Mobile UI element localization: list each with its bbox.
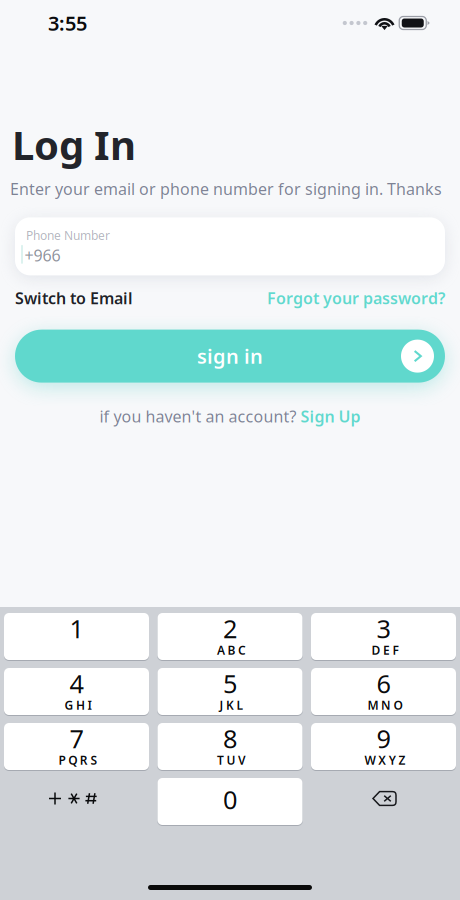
- staticText: Forgot your password?: [267, 287, 445, 309]
- button[interactable]: Sign Up: [300, 406, 360, 427]
- button[interactable]: 4: [4, 668, 149, 715]
- staticText: Sign Up: [300, 406, 360, 427]
- button[interactable]: Forgot your password?: [267, 287, 445, 309]
- staticText: 4: [69, 667, 83, 700]
- staticText: if you haven't an account?: [99, 406, 296, 427]
- staticText: WXYZ: [365, 752, 405, 768]
- staticText: MNO: [367, 697, 403, 713]
- staticText: sign in: [197, 343, 263, 369]
- staticText: 1: [69, 612, 83, 645]
- staticText: 8: [223, 722, 237, 755]
- staticText: Switch to Email: [15, 287, 133, 309]
- staticText: GHI: [64, 697, 92, 713]
- staticText: 6: [376, 667, 390, 700]
- staticText: JKL: [219, 697, 244, 713]
- staticText: ABC: [217, 642, 246, 658]
- staticText: Phone Number: [26, 227, 110, 243]
- staticText: 9: [376, 722, 390, 755]
- staticText: DEF: [371, 642, 399, 658]
- staticText: +966: [24, 245, 60, 266]
- button[interactable]: Switch to Email: [15, 287, 133, 309]
- staticText: 7: [69, 722, 83, 755]
- button[interactable]: 1: [4, 613, 149, 660]
- staticText: TUV: [217, 752, 246, 768]
- button[interactable]: 8: [157, 723, 302, 770]
- staticText: 0: [223, 783, 237, 816]
- button[interactable]: 2: [157, 613, 302, 660]
- button[interactable]: 3: [311, 613, 456, 660]
- button[interactable]: 9: [311, 723, 456, 770]
- button[interactable]: 7: [4, 723, 149, 770]
- button[interactable]: Symbols: [4, 778, 149, 825]
- button[interactable]: 5: [157, 668, 302, 715]
- button[interactable]: Delete: [311, 778, 456, 825]
- button[interactable]: 6: [311, 668, 456, 715]
- staticText: 2: [223, 612, 237, 645]
- button[interactable]: sign in: [15, 330, 445, 383]
- button[interactable]: 0: [157, 778, 302, 825]
- staticText: 3:55: [48, 10, 87, 36]
- staticText: PQRS: [59, 752, 97, 768]
- staticText: Enter your email or phone number for sig…: [10, 178, 442, 199]
- staticText: 5: [223, 667, 237, 700]
- staticText: Log In: [12, 118, 136, 171]
- staticText: 3: [376, 612, 390, 645]
